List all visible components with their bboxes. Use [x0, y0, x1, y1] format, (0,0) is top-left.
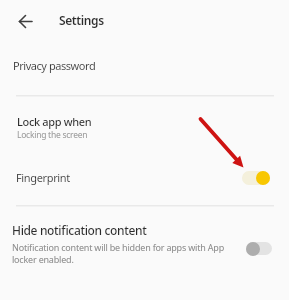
- button[interactable]: [242, 171, 270, 185]
- staticText: Settings: [59, 12, 104, 28]
- button[interactable]: [8, 8, 42, 36]
- staticText: Fingerprint: [16, 170, 70, 185]
- staticText: Notification content will be hidden for …: [12, 241, 224, 266]
- button[interactable]: [246, 242, 272, 255]
- button[interactable]: Hide notification content: [0, 214, 289, 274]
- staticText: Hide notification content: [12, 222, 147, 238]
- button[interactable]: Fingerprint: [0, 162, 289, 194]
- button[interactable]: Lock app when: [0, 105, 289, 149]
- staticText: Lock app when: [17, 114, 92, 129]
- button[interactable]: Privacy password: [0, 48, 289, 82]
- staticText: Privacy password: [13, 58, 96, 73]
- staticText: Locking the screen: [17, 129, 88, 141]
